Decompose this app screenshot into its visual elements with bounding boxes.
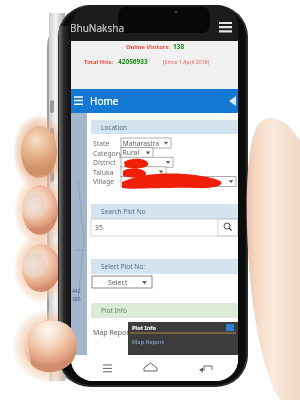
button[interactable] xyxy=(0,0,300,400)
